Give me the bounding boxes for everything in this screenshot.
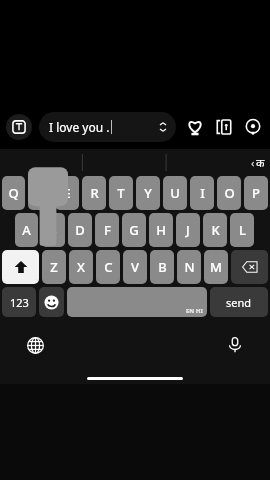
button[interactable]: Q (2, 176, 25, 210)
button[interactable]: send (210, 287, 268, 317)
button[interactable]: ‹ (251, 155, 265, 170)
staticText: L (239, 221, 246, 239)
button[interactable]: N (177, 250, 201, 284)
button[interactable]: Shift (2, 250, 39, 284)
staticText: C (104, 258, 113, 276)
button[interactable]: D (68, 213, 92, 247)
staticText: A (22, 221, 31, 239)
staticText: E (63, 184, 71, 202)
staticText: N (184, 258, 195, 276)
staticText: P (252, 184, 260, 202)
button[interactable]: M (204, 250, 228, 284)
staticText: क (256, 155, 265, 170)
button[interactable]: U (163, 176, 187, 210)
button[interactable]: L (230, 213, 254, 247)
staticText: X (77, 258, 85, 276)
button[interactable]: H (149, 213, 173, 247)
staticText: S (49, 221, 57, 239)
staticText: R (90, 184, 99, 202)
staticText: D (75, 221, 85, 239)
button[interactable]: I love you . (39, 112, 176, 142)
button[interactable]: Stickers (184, 116, 206, 138)
button[interactable]: W (28, 176, 52, 210)
staticText: 123 (10, 295, 29, 310)
staticText: Z (50, 258, 58, 276)
button[interactable]: P (244, 176, 268, 210)
button[interactable]: Emoji (39, 287, 64, 317)
staticText: K (211, 221, 220, 239)
staticText: T (117, 184, 125, 202)
button[interactable]: 123 (2, 287, 36, 317)
button[interactable]: Profile (6, 114, 32, 140)
staticText: J (186, 221, 190, 239)
button[interactable]: C (96, 250, 120, 284)
staticText: I love you . (49, 119, 110, 135)
button[interactable]: Y (136, 176, 160, 210)
staticText: I (200, 184, 205, 202)
button[interactable]: Z (42, 250, 66, 284)
staticText: U (170, 184, 180, 202)
staticText: Y (144, 184, 152, 202)
button[interactable]: O (217, 176, 241, 210)
staticText: B (158, 258, 167, 276)
staticText: O (224, 184, 235, 202)
button[interactable]: GIF (213, 116, 235, 138)
button[interactable]: X (69, 250, 93, 284)
button[interactable]: S (41, 213, 65, 247)
button[interactable]: Location (242, 116, 264, 138)
staticText: H (156, 221, 166, 239)
button[interactable]: V (123, 250, 147, 284)
staticText: M (210, 258, 222, 276)
staticText: Q (8, 184, 19, 202)
button[interactable]: G (122, 213, 146, 247)
button[interactable]: A (15, 213, 38, 247)
button[interactable]: Change language (22, 332, 48, 358)
button[interactable]: R (82, 176, 106, 210)
staticText: V (131, 258, 139, 276)
staticText: EN HI (186, 307, 203, 315)
button[interactable]: I (190, 176, 214, 210)
button[interactable]: E (55, 176, 79, 210)
button[interactable]: B (150, 250, 174, 284)
staticText: ‹ (251, 155, 255, 170)
button[interactable]: T (109, 176, 133, 210)
staticText: send (226, 295, 252, 310)
button[interactable]: Backspace (231, 250, 268, 284)
staticText: F (104, 221, 111, 239)
staticText: G (129, 221, 139, 239)
button[interactable]: F (95, 213, 119, 247)
button[interactable]: Voice input (222, 332, 248, 358)
button[interactable]: J (176, 213, 200, 247)
button[interactable]: K (203, 213, 227, 247)
button[interactable]: Space (67, 287, 207, 317)
